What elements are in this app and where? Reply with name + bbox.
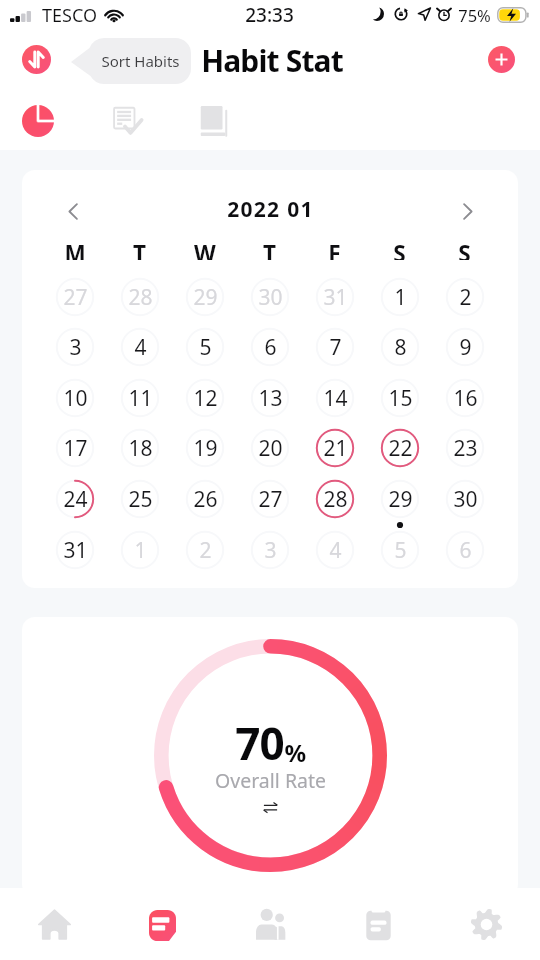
staticText: 31 [323, 283, 348, 312]
staticText: 17 [63, 434, 88, 463]
button[interactable]: 5 [377, 527, 423, 573]
button[interactable]: 4 [312, 527, 358, 573]
button[interactable]: 4 [117, 324, 163, 370]
staticText: 2 [459, 283, 472, 312]
button[interactable]: 25 [117, 476, 163, 522]
button[interactable]: 10 [52, 375, 98, 421]
button[interactable]: Friends [216, 888, 324, 960]
button[interactable]: 1 [117, 527, 163, 573]
button[interactable]: 5 [182, 324, 228, 370]
button[interactable]: Journal [188, 95, 240, 147]
button[interactable]: 6 [247, 324, 293, 370]
button[interactable]: 24 [52, 476, 98, 522]
button[interactable]: Statistics [12, 95, 64, 147]
staticText: 14 [323, 384, 348, 413]
button[interactable]: Next month [449, 193, 485, 229]
staticText: 70 [235, 713, 284, 773]
button[interactable]: Statistics [108, 888, 216, 960]
staticText: 8 [394, 333, 407, 362]
staticText: S [393, 238, 406, 260]
button[interactable]: 21 [312, 425, 358, 471]
button[interactable]: Settings [432, 888, 540, 960]
button[interactable]: 15 [377, 375, 423, 421]
staticText: 30 [453, 485, 478, 514]
button[interactable]: 30 [247, 274, 293, 320]
staticText: 21 [323, 434, 348, 463]
staticText: 75% [458, 4, 491, 26]
button[interactable]: 17 [52, 425, 98, 471]
button[interactable]: 31 [52, 527, 98, 573]
staticText: T [133, 238, 146, 260]
staticText: 31 [63, 536, 88, 565]
button[interactable]: 13 [247, 375, 293, 421]
button[interactable]: 29 [182, 274, 228, 320]
button[interactable]: 1 [377, 274, 423, 320]
button[interactable]: 28 [117, 274, 163, 320]
button[interactable]: Add habit [488, 46, 515, 73]
button[interactable]: 3 [52, 324, 98, 370]
button[interactable]: 31 [312, 274, 358, 320]
staticText: 2 [199, 536, 212, 565]
staticText: Overall Rate [215, 767, 326, 794]
button[interactable]: Tasks [324, 888, 432, 960]
button[interactable]: 19 [182, 425, 228, 471]
button[interactable]: Habit checklist [101, 95, 153, 147]
button[interactable]: 22 [377, 425, 423, 471]
button[interactable]: 20 [247, 425, 293, 471]
staticText: 20 [258, 434, 283, 463]
staticText: 27 [63, 283, 88, 312]
staticText: 29 [388, 485, 413, 514]
button[interactable]: 8 [377, 324, 423, 370]
button[interactable]: 27 [52, 274, 98, 320]
staticText: 9 [459, 333, 472, 362]
staticText: 24 [63, 485, 88, 514]
button[interactable]: 26 [182, 476, 228, 522]
staticText: 3 [264, 536, 277, 565]
button[interactable]: 6 [442, 527, 488, 573]
button[interactable]: Home [0, 888, 108, 960]
staticText: 28 [323, 485, 348, 514]
staticText: 10 [63, 384, 88, 413]
button[interactable]: 2 [182, 527, 228, 573]
button[interactable]: 16 [442, 375, 488, 421]
staticText: 1 [394, 283, 407, 312]
button[interactable]: 27 [247, 476, 293, 522]
button[interactable]: Switch metric [263, 802, 278, 813]
button[interactable]: 28 [312, 476, 358, 522]
staticText: 25 [128, 485, 153, 514]
button[interactable]: Sort Habits [22, 45, 51, 74]
staticText: 28 [128, 283, 153, 312]
staticText: 23 [453, 434, 478, 463]
button[interactable]: 12 [182, 375, 228, 421]
staticText: 30 [258, 283, 283, 312]
staticText: W [194, 238, 216, 260]
staticText: 6 [264, 333, 277, 362]
staticText: M [64, 238, 86, 260]
button[interactable]: 3 [247, 527, 293, 573]
staticText: TESCO [42, 3, 97, 28]
staticText: 16 [453, 384, 478, 413]
staticText: 4 [329, 536, 342, 565]
button[interactable]: 7 [312, 324, 358, 370]
button[interactable]: 11 [117, 375, 163, 421]
button[interactable]: 14 [312, 375, 358, 421]
staticText: S [458, 238, 471, 260]
button[interactable]: 23 [442, 425, 488, 471]
staticText: 5 [394, 536, 407, 565]
button[interactable]: 2 [442, 274, 488, 320]
button[interactable]: Previous month [55, 193, 91, 229]
button[interactable]: 9 [442, 324, 488, 370]
button[interactable]: 29 [377, 476, 423, 522]
staticText: 15 [388, 384, 413, 413]
staticText: 2022 01 [227, 195, 314, 224]
staticText: 7 [329, 333, 342, 362]
staticText: F [328, 238, 341, 260]
staticText: 5 [199, 333, 212, 362]
staticText: 3 [69, 333, 82, 362]
button[interactable]: 18 [117, 425, 163, 471]
button[interactable]: 30 [442, 476, 488, 522]
staticText: Sort Habits [101, 51, 180, 71]
staticText: 19 [193, 434, 218, 463]
staticText: 23:33 [245, 2, 294, 28]
staticText: 26 [193, 485, 218, 514]
